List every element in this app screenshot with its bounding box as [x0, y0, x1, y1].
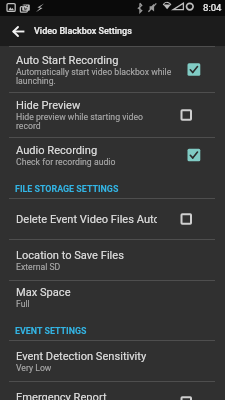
staticText: External SD — [16, 262, 179, 272]
staticText: Audio Recording — [16, 144, 157, 157]
button[interactable]: Back — [0, 16, 31, 46]
staticText: Max Space — [16, 286, 157, 299]
button[interactable]: Toggle — [180, 199, 225, 239]
button[interactable]: Toggle — [180, 47, 225, 92]
button[interactable]: Event Detection Sensitivity — [0, 341, 225, 381]
button[interactable]: Max Space — [0, 281, 225, 314]
staticText: 8:04 — [203, 2, 222, 13]
button[interactable]: Location to Save Files — [0, 240, 225, 280]
staticText: Video Blackbox Settings — [34, 26, 132, 37]
staticText: EVENT SETTINGS — [15, 326, 87, 336]
button[interactable]: Toggle — [180, 138, 225, 172]
staticText: Event Detection Sensitivity — [16, 350, 157, 363]
staticText: Automatically start video blackbox while… — [16, 67, 179, 86]
staticText: Very Low — [16, 363, 179, 373]
button[interactable]: Toggle — [180, 382, 225, 400]
button[interactable]: Audio Recording — [0, 138, 225, 172]
staticText: Hide preview while starting video record — [16, 112, 179, 131]
staticText: Check for recording audio — [16, 157, 179, 167]
staticText: Full — [16, 299, 179, 309]
staticText: FILE STORAGE SETTINGS — [15, 184, 119, 194]
button[interactable]: Hide Preview — [0, 93, 225, 137]
button[interactable]: Auto Start Recording — [0, 47, 225, 92]
staticText: Hide Preview — [16, 99, 157, 112]
button[interactable]: Toggle — [180, 93, 225, 137]
button[interactable]: Emergency Report — [0, 382, 225, 400]
staticText: Location to Save Files — [16, 249, 157, 262]
button[interactable]: Delete Event Video Files Automatically — [0, 199, 225, 239]
staticText: Emergency Report — [16, 391, 157, 400]
staticText: Delete Event Video Files Automatically — [16, 213, 157, 226]
staticText: Auto Start Recording — [16, 54, 157, 67]
